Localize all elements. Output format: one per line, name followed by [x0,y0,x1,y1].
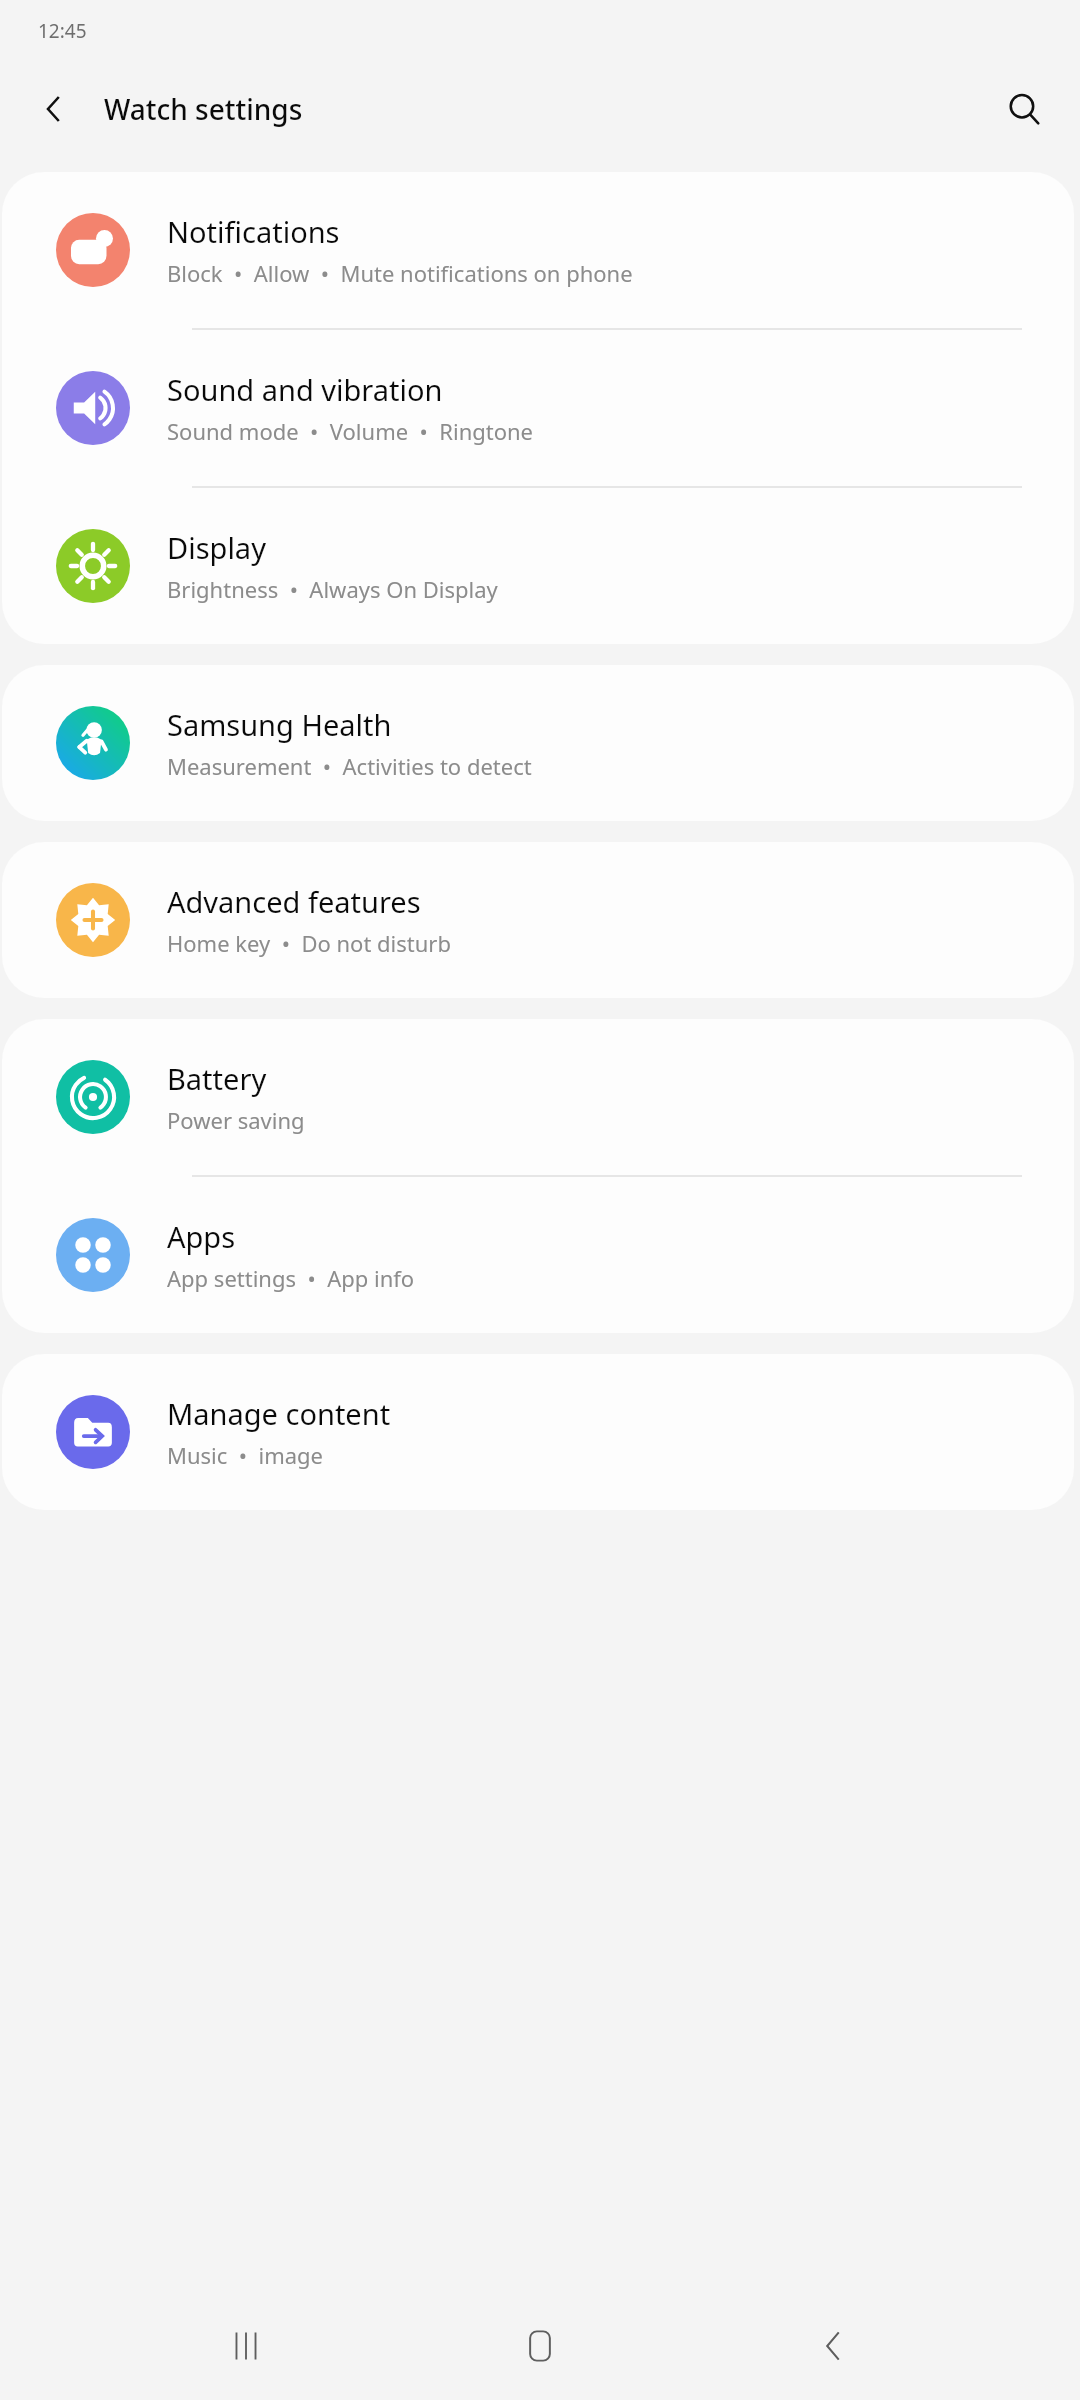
button[interactable]: Back [22,77,86,141]
staticText: Samsung Health [167,705,392,744]
button[interactable]: Battery [2,1019,1074,1175]
button[interactable]: Back [786,2298,882,2394]
button[interactable]: Samsung Health [2,665,1074,821]
staticText: Display [167,528,266,567]
staticText: 12:45 [38,18,87,44]
staticText: Home key • Do not disturb [167,928,451,958]
button[interactable]: Sound and vibration [2,330,1074,486]
staticText: Advanced features [167,882,421,921]
button[interactable]: Display [2,488,1074,644]
button[interactable]: Home [492,2298,588,2394]
staticText: Measurement • Activities to detect [167,751,532,781]
staticText: Battery [167,1059,267,1098]
staticText: Brightness • Always On Display [167,574,498,604]
staticText: Notifications [167,212,340,251]
staticText: Block • Allow • Mute notifications on ph… [167,258,633,288]
button[interactable]: Notifications [2,172,1074,328]
staticText: Apps [167,1217,236,1256]
staticText: Manage content [167,1394,391,1433]
button[interactable]: Manage content [2,1354,1074,1510]
staticText: Power saving [167,1105,305,1135]
staticText: Watch settings [104,90,303,128]
staticText: Music • image [167,1440,324,1470]
button[interactable]: Apps [2,1177,1074,1333]
button[interactable]: Search [992,77,1056,141]
button[interactable]: Advanced features [2,842,1074,998]
staticText: Sound and vibration [167,370,443,409]
button[interactable]: Recents [198,2298,294,2394]
staticText: Sound mode • Volume • Ringtone [167,416,534,446]
staticText: App settings • App info [167,1263,415,1293]
